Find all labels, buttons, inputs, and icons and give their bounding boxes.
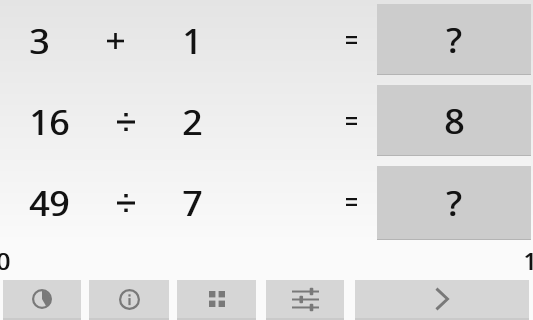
button[interactable]: Statistics (3, 280, 81, 320)
button[interactable]: Settings (266, 280, 344, 320)
staticText: 16 (29, 98, 70, 146)
staticText: 8 (444, 97, 465, 145)
button[interactable]: ? (377, 4, 531, 75)
staticText: ? (446, 179, 462, 227)
staticText: 49 (30, 179, 71, 227)
staticText: 0 (0, 244, 11, 277)
staticText: 1 (183, 17, 204, 65)
staticText: 0 (0, 244, 10, 277)
button[interactable]: Next (355, 280, 529, 320)
staticText: 3 (29, 17, 50, 65)
staticText: 8 (445, 97, 466, 145)
staticText: 1 (523, 244, 533, 277)
staticText: 7 (183, 179, 204, 227)
staticText: 1 (182, 17, 203, 65)
button[interactable]: 8 (377, 85, 531, 156)
staticText: 2 (182, 98, 203, 146)
staticText: 1 (524, 244, 533, 277)
button[interactable]: Layout (177, 280, 256, 320)
staticText: 2 (183, 98, 204, 146)
staticText: ? (446, 16, 462, 64)
staticText: 49 (29, 179, 70, 227)
button[interactable]: Info (89, 280, 169, 320)
staticText: ? (447, 179, 463, 227)
staticText: 16 (30, 98, 71, 146)
staticText: 7 (182, 179, 203, 227)
button[interactable]: ? (377, 166, 531, 240)
staticText: ? (447, 16, 463, 64)
staticText: 3 (30, 17, 51, 65)
